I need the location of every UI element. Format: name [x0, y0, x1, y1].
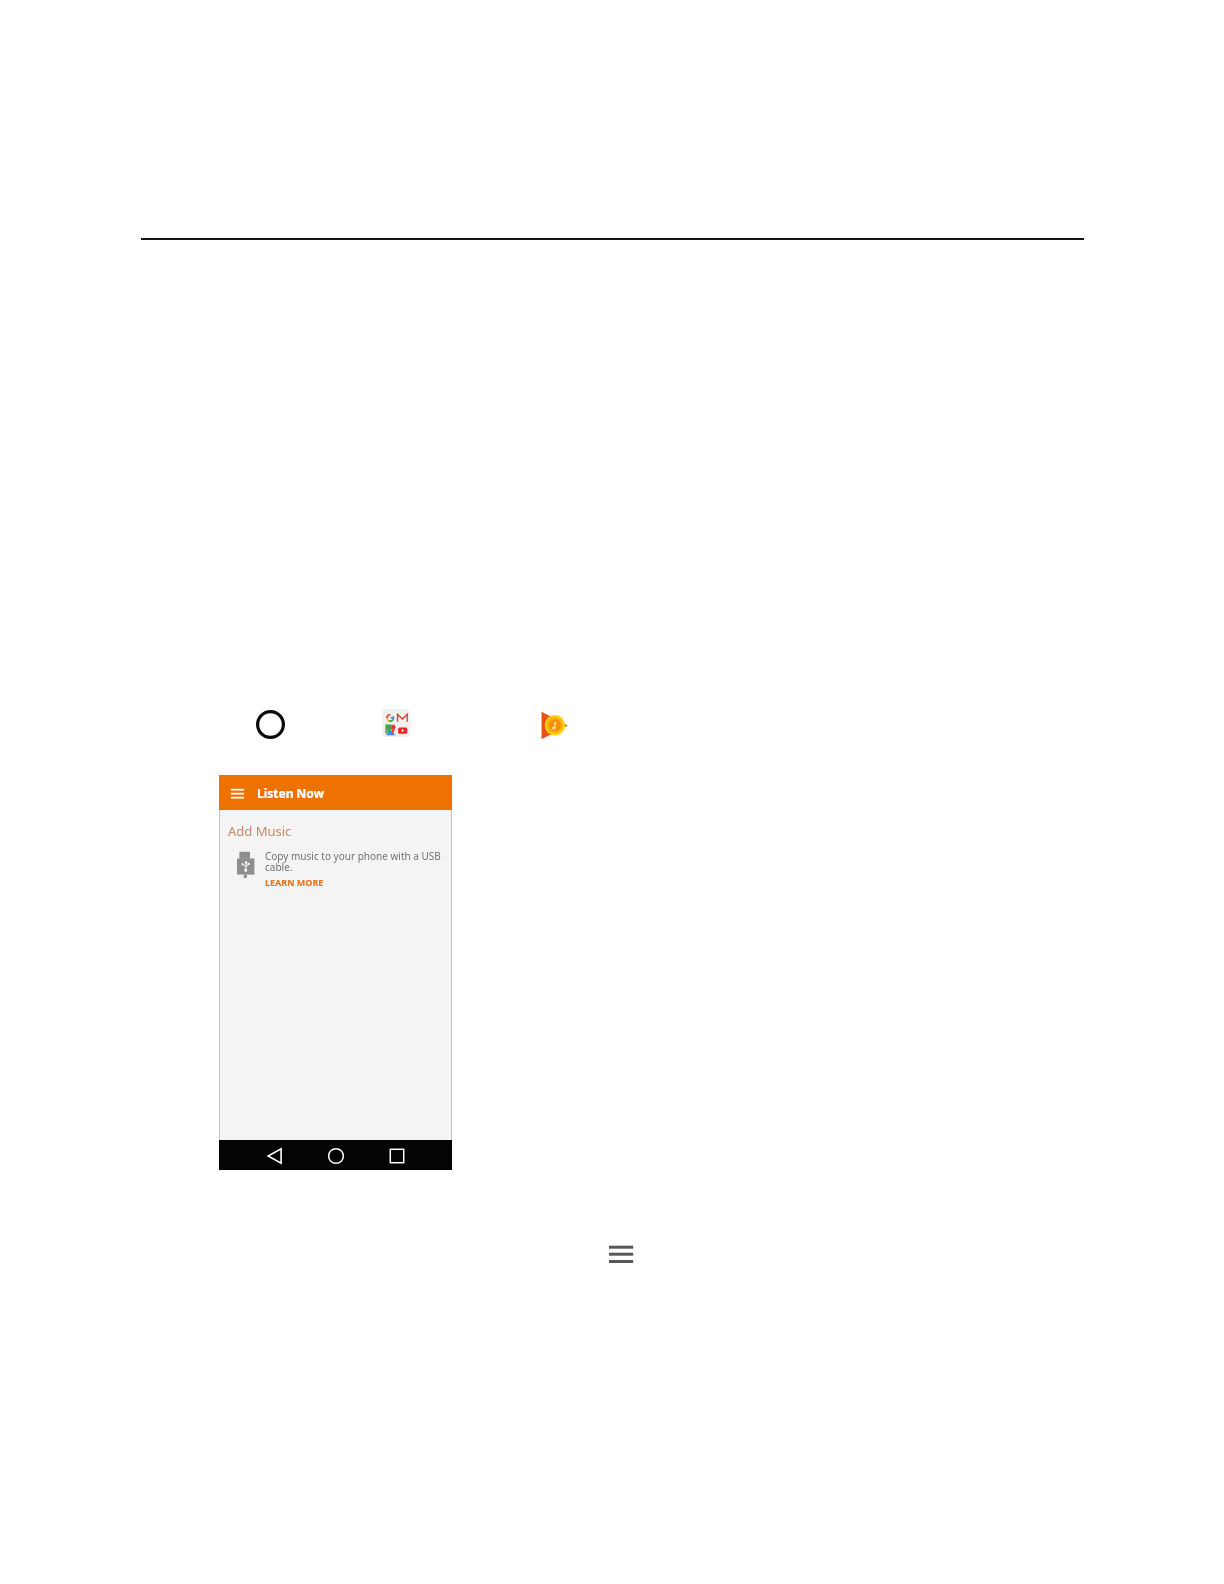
button[interactable]: Play Music — [541, 711, 568, 740]
staticText: Copy music to your phone with a USB cabl… — [265, 849, 443, 874]
staticText: LEARN MORE — [265, 876, 324, 888]
staticText: Listen Now — [257, 785, 324, 801]
button[interactable]: Home — [328, 1148, 344, 1164]
button[interactable]: Google apps folder — [382, 709, 410, 737]
button[interactable]: Home — [256, 710, 285, 739]
button[interactable]: Recent apps — [389, 1148, 405, 1164]
button[interactable]: Back — [267, 1148, 283, 1164]
button[interactable]: Menu — [606, 1241, 636, 1267]
button[interactable]: Navigation menu — [228, 786, 247, 802]
button[interactable]: LEARN MORE — [263, 872, 325, 887]
staticText: Add Music — [228, 822, 292, 840]
